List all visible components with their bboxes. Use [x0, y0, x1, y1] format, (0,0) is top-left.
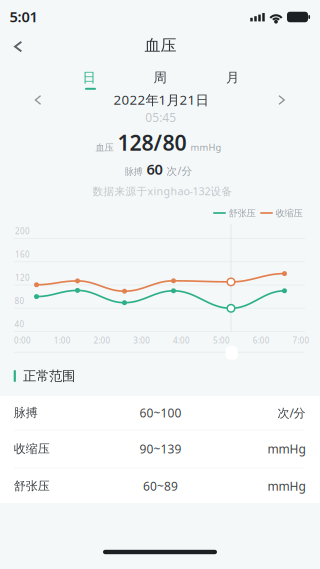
staticText: 5:00: [213, 335, 230, 346]
staticText: 80: [14, 296, 24, 306]
staticText: 160: [15, 249, 30, 260]
staticText: 128/80: [117, 128, 186, 157]
staticText: 6:00: [253, 335, 270, 346]
staticText: 数据来源于xinghao-132设备: [92, 184, 232, 198]
staticText: 正常范围: [23, 368, 75, 384]
staticText: 收缩压: [14, 441, 50, 456]
staticText: 脉搏: [124, 166, 142, 177]
staticText: 2022年1月21日: [113, 91, 208, 108]
staticText: 脉搏: [14, 405, 38, 420]
button[interactable]: Previous day: [21, 86, 55, 114]
staticText: 次/分: [277, 405, 305, 421]
staticText: 周: [153, 69, 166, 86]
staticText: 4:00: [173, 335, 190, 346]
staticText: 0:00: [14, 335, 31, 346]
staticText: 1:00: [54, 335, 71, 346]
staticText: 60~89: [143, 478, 178, 494]
button[interactable]: Back: [0, 29, 36, 65]
staticText: 60~100: [139, 405, 181, 421]
staticText: 05:45: [145, 109, 176, 125]
button[interactable]: Next day: [265, 86, 299, 114]
staticText: 40: [14, 319, 24, 329]
staticText: 90~139: [139, 441, 181, 457]
staticText: 200: [15, 226, 30, 236]
staticText: 血压: [144, 36, 176, 55]
button[interactable]: 日: [63, 62, 115, 92]
staticText: 舒张压: [228, 207, 255, 219]
staticText: 收缩压: [275, 207, 302, 219]
staticText: mmHg: [190, 141, 221, 153]
staticText: 月: [226, 69, 239, 86]
staticText: 3:00: [133, 335, 150, 346]
staticText: 2:00: [93, 335, 110, 346]
staticText: 血压: [95, 142, 113, 153]
staticText: 5:01: [9, 7, 37, 26]
staticText: 舒张压: [14, 479, 50, 493]
button[interactable]: 周: [134, 62, 186, 92]
staticText: 日: [82, 69, 95, 86]
button[interactable]: 月: [206, 62, 258, 92]
staticText: 次/分: [166, 164, 192, 178]
staticText: 60: [146, 159, 162, 179]
staticText: 120: [15, 272, 30, 283]
staticText: 7:00: [292, 335, 309, 346]
staticText: mmHg: [267, 441, 305, 457]
staticText: mmHg: [267, 478, 305, 494]
